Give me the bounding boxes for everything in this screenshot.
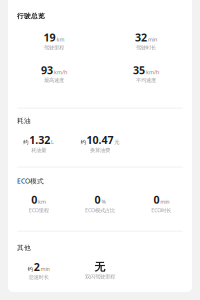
staticText: 耗油量 xyxy=(31,147,46,154)
staticText: km/h xyxy=(54,68,67,76)
staticText: ECO模式 xyxy=(17,176,44,185)
staticText: min xyxy=(40,265,49,273)
staticText: 93 xyxy=(41,63,53,77)
staticText: ECO模式占比 xyxy=(85,207,115,214)
staticText: 0 xyxy=(153,192,159,207)
staticText: 双闪驾驶里程 xyxy=(85,273,115,280)
staticText: 平均速度 xyxy=(136,77,156,84)
staticText: 1.32 xyxy=(29,133,50,147)
staticText: 2 xyxy=(34,260,40,274)
staticText: min xyxy=(148,36,157,43)
staticText: ECO时长 xyxy=(151,207,171,214)
staticText: 0 xyxy=(31,192,37,207)
staticText: L xyxy=(51,138,54,145)
staticText: 怠速时长 xyxy=(29,274,49,281)
staticText: km xyxy=(38,198,46,205)
staticText: min xyxy=(160,198,169,205)
staticText: 19 xyxy=(44,30,56,44)
staticText: 耗油 xyxy=(17,117,31,125)
staticText: 32 xyxy=(135,30,147,44)
staticText: 行驶总览 xyxy=(17,12,45,20)
staticText: 约 xyxy=(81,139,86,146)
staticText: % xyxy=(101,198,105,205)
staticText: 元 xyxy=(114,139,119,146)
staticText: 驾驶里程 xyxy=(44,44,64,51)
staticText: 最高速度 xyxy=(44,77,64,84)
staticText: km xyxy=(56,36,64,43)
staticText: 换算油费 xyxy=(90,147,110,154)
staticText: 约 xyxy=(28,266,33,273)
staticText: 约 xyxy=(23,139,28,146)
staticText: 其他 xyxy=(17,244,31,252)
staticText: 35 xyxy=(133,63,145,77)
staticText: 0 xyxy=(95,192,101,207)
staticText: 驾驶时长 xyxy=(136,44,156,51)
staticText: ECO里程 xyxy=(29,207,49,214)
staticText: 10.47 xyxy=(86,133,113,147)
staticText: 无 xyxy=(94,260,105,273)
staticText: km/h xyxy=(146,68,159,76)
